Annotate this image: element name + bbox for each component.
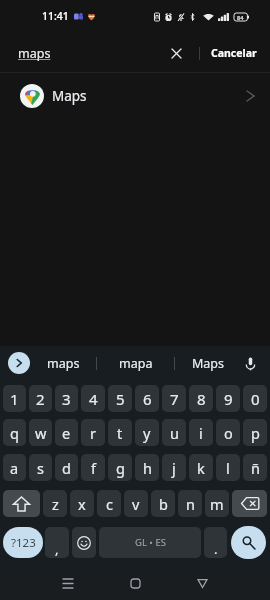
button[interactable]: p <box>243 419 267 446</box>
button[interactable]: Maps <box>186 346 230 381</box>
button[interactable]: 1 <box>3 385 26 412</box>
staticText: a <box>10 458 19 478</box>
button[interactable]: Maps <box>0 73 270 118</box>
button[interactable]: u <box>162 419 186 446</box>
staticText: Cancelar <box>211 46 257 60</box>
staticText: t <box>117 423 123 443</box>
staticText: w <box>35 423 47 443</box>
button[interactable]: . <box>204 527 227 558</box>
staticText: n <box>186 494 195 514</box>
staticText: q <box>10 423 19 443</box>
button[interactable]: w <box>29 419 52 446</box>
staticText: b <box>159 494 168 514</box>
staticText: i <box>199 423 203 443</box>
staticText: 0 <box>251 389 260 409</box>
button[interactable]: h <box>135 454 159 481</box>
staticText: 3 <box>62 389 71 409</box>
button[interactable]: Voice input <box>238 352 262 376</box>
button[interactable]: ?123 <box>3 527 43 558</box>
button[interactable]: v <box>124 490 148 517</box>
staticText: 84 <box>237 14 244 21</box>
button[interactable]: y <box>135 419 159 446</box>
staticText: r <box>90 423 96 443</box>
button[interactable]: Search <box>231 526 266 559</box>
button[interactable]: Clear query <box>163 40 189 66</box>
staticText: 5 <box>116 389 125 409</box>
staticText: . <box>214 540 218 558</box>
button[interactable]: 5 <box>108 385 132 412</box>
button[interactable]: Home <box>119 568 151 599</box>
button[interactable]: z <box>43 490 67 517</box>
staticText: p <box>251 423 260 443</box>
button[interactable]: Cancelar <box>205 38 263 68</box>
button[interactable]: o <box>216 419 240 446</box>
button[interactable]: mapa <box>114 346 158 381</box>
staticText: m <box>210 494 224 514</box>
staticText: 6 <box>143 389 152 409</box>
staticText: o <box>224 423 233 443</box>
button[interactable]: 4 <box>81 385 105 412</box>
staticText: 11:41 <box>42 9 69 23</box>
button[interactable]: maps <box>41 346 85 381</box>
button[interactable]: 3 <box>55 385 78 412</box>
staticText: u <box>170 423 179 443</box>
button[interactable]: , <box>45 527 69 558</box>
staticText: y <box>143 423 151 443</box>
button[interactable]: b <box>151 490 175 517</box>
staticText: k <box>197 458 205 478</box>
staticText: 1 <box>10 389 19 409</box>
staticText: maps <box>47 355 80 372</box>
button[interactable]: n <box>178 490 202 517</box>
button[interactable]: x <box>70 490 94 517</box>
button[interactable]: s <box>29 454 52 481</box>
staticText: z <box>52 494 59 514</box>
staticText: d <box>62 458 71 478</box>
button[interactable]: g <box>108 454 132 481</box>
button[interactable]: j <box>162 454 186 481</box>
staticText: GL • ES <box>135 536 166 549</box>
button[interactable]: More suggestions <box>8 352 30 374</box>
staticText: 4 <box>89 389 98 409</box>
button[interactable]: Backspace <box>232 490 267 517</box>
staticText: v <box>132 494 140 514</box>
button[interactable]: m <box>205 490 229 517</box>
button[interactable]: 8 <box>189 385 213 412</box>
button[interactable]: 0 <box>243 385 267 412</box>
staticText: f <box>91 458 96 478</box>
staticText: 9 <box>224 389 233 409</box>
staticText: ?123 <box>11 535 36 551</box>
button[interactable]: d <box>55 454 78 481</box>
button[interactable]: t <box>108 419 132 446</box>
staticText: mapa <box>119 355 153 372</box>
staticText: 8 <box>197 389 206 409</box>
button[interactable]: r <box>81 419 105 446</box>
button[interactable]: Recent apps <box>52 568 84 599</box>
staticText: s <box>37 458 44 478</box>
staticText: 7 <box>170 389 179 409</box>
button[interactable]: k <box>189 454 213 481</box>
staticText: Maps <box>192 355 225 372</box>
button[interactable]: f <box>81 454 105 481</box>
button[interactable]: Emoji <box>72 527 96 558</box>
button[interactable]: GL • ES <box>99 527 201 558</box>
staticText: x <box>78 494 86 514</box>
button[interactable]: q <box>3 419 26 446</box>
button[interactable]: ñ <box>243 454 267 481</box>
staticText: h <box>143 458 152 478</box>
button[interactable]: i <box>189 419 213 446</box>
staticText: Maps <box>52 87 87 105</box>
button[interactable]: c <box>97 490 121 517</box>
button[interactable]: 9 <box>216 385 240 412</box>
staticText: 2 <box>36 389 45 409</box>
button[interactable]: a <box>3 454 26 481</box>
button[interactable]: l <box>216 454 240 481</box>
staticText: l <box>226 458 230 478</box>
button[interactable]: Shift <box>3 490 40 517</box>
button[interactable]: e <box>55 419 78 446</box>
button[interactable]: 7 <box>162 385 186 412</box>
button[interactable]: Back <box>186 568 218 599</box>
button[interactable]: 2 <box>29 385 52 412</box>
staticText: c <box>106 494 113 514</box>
staticText: g <box>116 458 125 478</box>
button[interactable]: 6 <box>135 385 159 412</box>
